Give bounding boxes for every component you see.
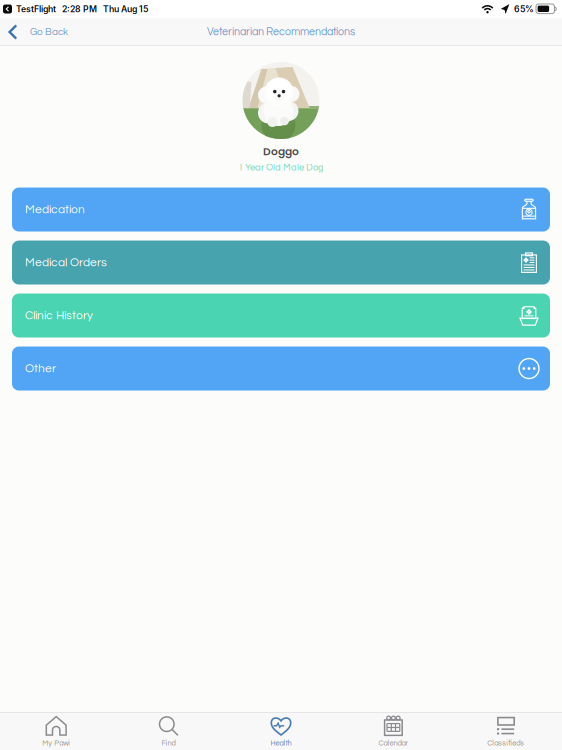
staticText: Other bbox=[25, 362, 56, 375]
button[interactable]: Medical Orders bbox=[12, 240, 550, 284]
button[interactable]: Calendar bbox=[337, 712, 450, 749]
staticText: Medication bbox=[25, 203, 85, 216]
button[interactable]: Medication bbox=[12, 187, 550, 231]
staticText: 1 Year Old Male Dog bbox=[238, 163, 324, 172]
staticText: Health bbox=[270, 739, 291, 747]
staticText: My Pawi bbox=[42, 739, 70, 747]
staticText: Thu Aug 15 bbox=[97, 4, 148, 14]
staticText: TestFlight bbox=[12, 4, 56, 14]
button[interactable]: Other bbox=[12, 346, 550, 390]
button[interactable]: Clinic History bbox=[12, 293, 550, 337]
staticText: Medical Orders bbox=[25, 256, 107, 269]
staticText: Doggo bbox=[263, 144, 299, 159]
button[interactable]: Health bbox=[225, 712, 337, 749]
staticText: Calendar bbox=[378, 739, 408, 747]
button[interactable]: Find bbox=[112, 712, 225, 749]
staticText: 65% bbox=[510, 4, 536, 14]
staticText: Veterinarian Recommendations bbox=[207, 26, 355, 37]
button[interactable]: Classifieds bbox=[450, 712, 562, 749]
staticText: 2:28 PM bbox=[56, 4, 97, 14]
button[interactable]: Go Back bbox=[0, 18, 78, 46]
staticText: Go Back bbox=[30, 27, 68, 37]
staticText: Clinic History bbox=[25, 309, 93, 322]
staticText: Find bbox=[162, 739, 176, 747]
button[interactable]: My Pawi bbox=[0, 712, 112, 749]
staticText: Classifieds bbox=[487, 739, 524, 747]
